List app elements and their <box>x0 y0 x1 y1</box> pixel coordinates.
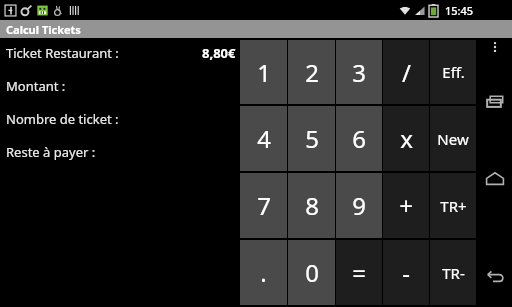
staticText: / <box>402 56 411 89</box>
button[interactable]: = <box>336 240 382 305</box>
button[interactable]: TR- <box>430 240 476 305</box>
button[interactable]: 2 <box>288 40 335 104</box>
staticText: 0 <box>305 256 319 289</box>
staticText: 8 <box>305 189 319 222</box>
button[interactable]: 7 <box>240 173 287 238</box>
staticText: 6 <box>352 122 366 155</box>
staticText: + <box>399 189 413 222</box>
staticText: 3 <box>352 56 366 89</box>
staticText: . <box>260 256 267 289</box>
button[interactable]: 3 <box>336 40 382 104</box>
button[interactable]: New <box>430 106 476 171</box>
button[interactable]: / <box>383 40 429 104</box>
button[interactable]: More options <box>480 32 510 62</box>
button[interactable]: Home <box>478 163 512 197</box>
button[interactable]: 5 <box>288 106 335 171</box>
staticText: TR- <box>442 263 465 283</box>
staticText: 5 <box>305 122 319 155</box>
button[interactable]: 6 <box>336 106 382 171</box>
button[interactable]: 8 <box>288 173 335 238</box>
button[interactable]: Recent apps <box>478 86 512 120</box>
staticText: 7 <box>257 189 271 222</box>
staticText: New <box>437 129 469 149</box>
staticText: 9 <box>352 189 366 222</box>
staticText: 4 <box>257 122 271 155</box>
button[interactable]: 9 <box>336 173 382 238</box>
button[interactable]: 4 <box>240 106 287 171</box>
staticText: Reste à payer : <box>6 143 96 161</box>
staticText: x <box>400 122 413 155</box>
button[interactable]: + <box>383 173 429 238</box>
button[interactable]: TR+ <box>430 173 476 238</box>
staticText: Eff. <box>442 62 465 82</box>
staticText: Montant : <box>6 77 66 95</box>
staticText: = <box>352 256 366 289</box>
button[interactable]: 0 <box>288 240 335 305</box>
button[interactable]: - <box>383 240 429 305</box>
staticText: Calcul Tickets <box>6 22 81 37</box>
staticText: - <box>402 256 410 289</box>
button[interactable]: 1 <box>240 40 287 104</box>
button[interactable]: . <box>240 240 287 305</box>
button[interactable]: x <box>383 106 429 171</box>
staticText: Ticket Restaurant : <box>6 44 119 62</box>
staticText: 1 <box>257 56 271 89</box>
staticText: 8,80€ <box>202 44 236 62</box>
staticText: TR+ <box>440 196 467 216</box>
staticText: 15:45 <box>445 3 474 18</box>
staticText: Nombre de ticket : <box>6 110 119 128</box>
button[interactable]: Eff. <box>430 40 476 104</box>
button[interactable]: Back <box>478 260 512 294</box>
staticText: 2 <box>305 56 319 89</box>
